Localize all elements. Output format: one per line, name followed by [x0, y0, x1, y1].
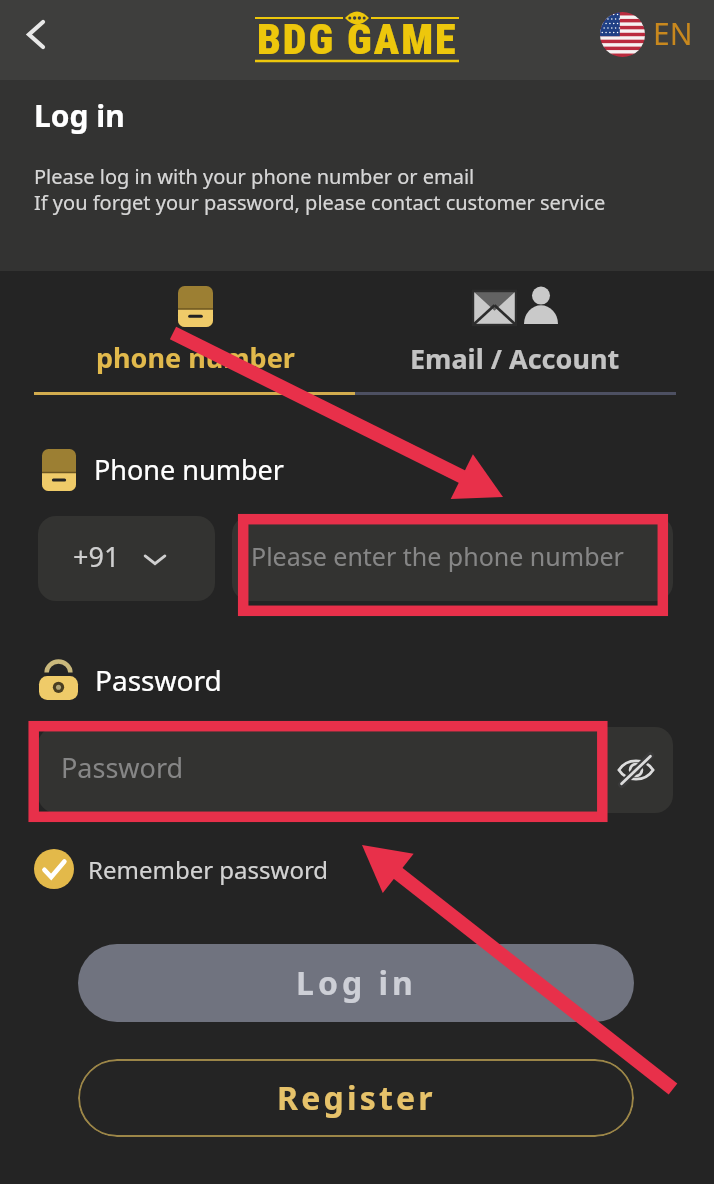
staticText: Email / Account [410, 340, 620, 377]
button[interactable]: phone number [34, 271, 356, 376]
staticText: Phone number [94, 451, 284, 488]
staticText: phone number [96, 339, 295, 376]
button[interactable]: Show password [599, 727, 673, 813]
staticText: Please log in with your phone number or … [34, 163, 606, 216]
staticText: Password [95, 661, 222, 699]
staticText: Register [277, 1076, 436, 1120]
button[interactable]: Log in [78, 944, 634, 1022]
staticText: Log in [296, 961, 417, 1005]
staticText: Log in [34, 95, 125, 136]
staticText: EN [653, 13, 693, 54]
staticText: +91 [73, 538, 120, 575]
button[interactable]: +91 [38, 516, 215, 601]
button[interactable]: Remember password [29, 844, 334, 894]
button[interactable]: Register [78, 1059, 634, 1137]
staticText: Please enter the phone number [251, 539, 624, 573]
button[interactable]: Back [12, 10, 60, 58]
button[interactable]: Password [38, 727, 599, 813]
button[interactable]: EN [592, 6, 704, 63]
staticText: Password [61, 749, 184, 786]
button[interactable]: Please enter the phone number [232, 516, 673, 601]
staticText: Remember password [88, 853, 329, 886]
staticText: BDG GAME [257, 15, 458, 64]
button[interactable]: Email / Account [354, 271, 676, 377]
